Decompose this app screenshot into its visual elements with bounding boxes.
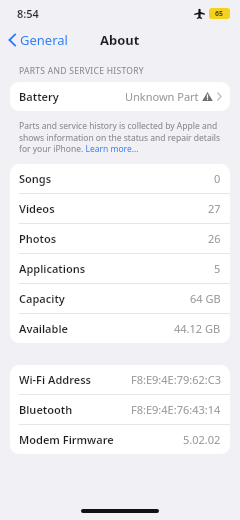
staticText: 26 [208,231,221,246]
staticText: 5.02.02 [183,432,221,447]
staticText: 8:54 [17,6,39,21]
button[interactable]: Capacity [10,284,230,313]
staticText: Modem Firmware [19,432,114,447]
staticText: PARTS AND SERVICE HISTORY [19,65,144,77]
button[interactable]: General [0,28,76,52]
button[interactable]: Modem Firmware [10,425,230,454]
staticText: 5 [214,261,221,276]
staticText: Songs [19,171,52,186]
button[interactable]: Songs [10,164,230,193]
staticText: Parts and service history is collected b… [19,120,224,155]
staticText: Videos [19,201,55,216]
button[interactable]: Wi-Fi Address [10,365,230,394]
button[interactable]: Battery [10,82,230,111]
staticText: Wi-Fi Address [19,372,92,387]
staticText: F8:E9:4E:76:43:14 [131,402,221,417]
button[interactable]: Bluetooth [10,395,230,424]
staticText: Applications [19,261,86,276]
staticText: 65 [215,9,224,19]
staticText: 27 [208,201,221,216]
staticText: Battery [19,89,59,104]
button[interactable]: Available [10,314,230,343]
staticText: About [100,31,140,49]
button[interactable]: Videos [10,194,230,223]
staticText: F8:E9:4E:79:62:C3 [131,372,221,387]
staticText: 64 GB [190,291,221,306]
staticText: Capacity [19,291,65,306]
button[interactable]: Applications [10,254,230,283]
staticText: Photos [19,231,57,246]
staticText: Unknown Part [125,89,199,104]
staticText: 0 [214,171,221,186]
staticText: General [20,31,68,49]
staticText: Bluetooth [19,402,73,417]
staticText: 44.12 GB [174,321,221,336]
staticText: Available [19,321,68,336]
button[interactable]: Photos [10,224,230,253]
